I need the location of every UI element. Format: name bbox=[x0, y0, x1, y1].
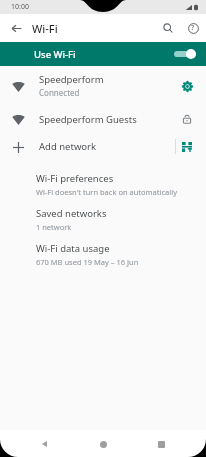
staticText: Wi‑Fi preferences bbox=[36, 172, 114, 185]
button[interactable]: Back bbox=[32, 431, 58, 457]
staticText: Wi‑Fi doesn't turn back on automatically bbox=[36, 187, 177, 197]
staticText: 670 MB used 19 May – 16 Jun bbox=[36, 257, 139, 267]
staticText: 1 network bbox=[36, 222, 72, 232]
staticText: Speedperform bbox=[39, 73, 104, 86]
staticText: Speedperform Guests bbox=[39, 113, 137, 126]
button[interactable]: Add network bbox=[0, 133, 206, 160]
staticText: Wi‑Fi data usage bbox=[36, 242, 110, 255]
button[interactable]: Wi‑Fi preferences bbox=[0, 167, 206, 202]
staticText: Connected bbox=[39, 87, 80, 98]
staticText: Wi‑Fi bbox=[32, 21, 58, 36]
staticText: Add network bbox=[39, 140, 175, 153]
button[interactable]: Wi‑Fi data usage bbox=[0, 237, 206, 272]
button[interactable]: Use Wi‑Fi bbox=[0, 42, 206, 66]
staticText: ? bbox=[191, 23, 195, 33]
staticText: 10:00 bbox=[11, 2, 29, 12]
button[interactable]: Saved networks bbox=[0, 202, 206, 237]
staticText: Use Wi‑Fi bbox=[34, 48, 174, 61]
button[interactable]: Speedperform bbox=[0, 66, 206, 105]
button[interactable]: Home bbox=[90, 431, 116, 457]
button[interactable]: Search bbox=[156, 16, 180, 40]
staticText: Saved networks bbox=[36, 207, 107, 220]
button[interactable]: Back bbox=[5, 17, 27, 39]
button[interactable]: Recent apps bbox=[148, 431, 174, 457]
button[interactable]: Secured network bbox=[176, 108, 198, 130]
button[interactable]: Help bbox=[180, 15, 206, 41]
button[interactable]: Speedperform Guests bbox=[0, 105, 206, 133]
button[interactable]: Scan QR code bbox=[176, 136, 198, 158]
button[interactable]: Network settings bbox=[176, 75, 198, 97]
